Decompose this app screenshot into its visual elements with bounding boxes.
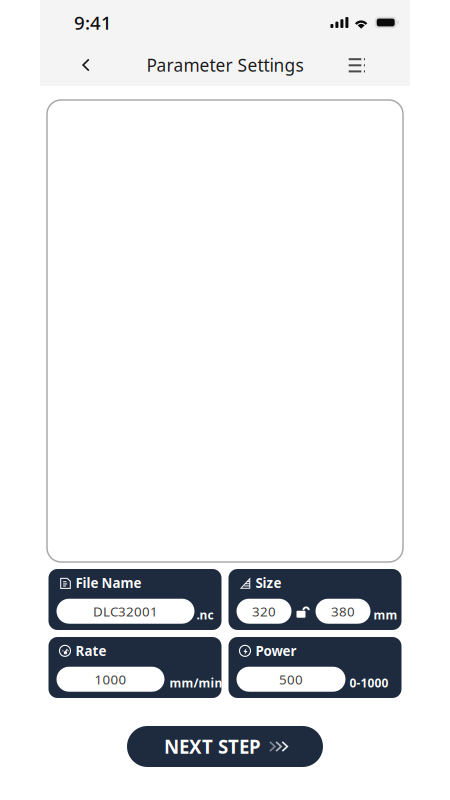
staticText: 500: [279, 670, 303, 688]
staticText: mm/min: [169, 675, 222, 691]
staticText: 1000: [94, 670, 126, 688]
staticText: Power: [255, 642, 296, 660]
button[interactable]: Back: [68, 47, 104, 82]
staticText: File Name: [75, 574, 141, 592]
staticText: mm: [373, 607, 397, 623]
staticText: .nc: [196, 607, 213, 623]
button[interactable]: NEXT STEP: [127, 726, 323, 767]
staticText: 320: [252, 602, 276, 620]
button[interactable]: Menu options: [334, 47, 382, 83]
staticText: Rate: [75, 642, 106, 660]
staticText: 380: [331, 602, 355, 620]
staticText: 0-1000: [349, 675, 388, 691]
staticText: Size: [255, 574, 281, 592]
staticText: Parameter Settings: [146, 53, 303, 76]
staticText: NEXT STEP: [164, 734, 261, 759]
staticText: DLC32001: [93, 602, 158, 620]
staticText: 9:41: [74, 10, 112, 35]
